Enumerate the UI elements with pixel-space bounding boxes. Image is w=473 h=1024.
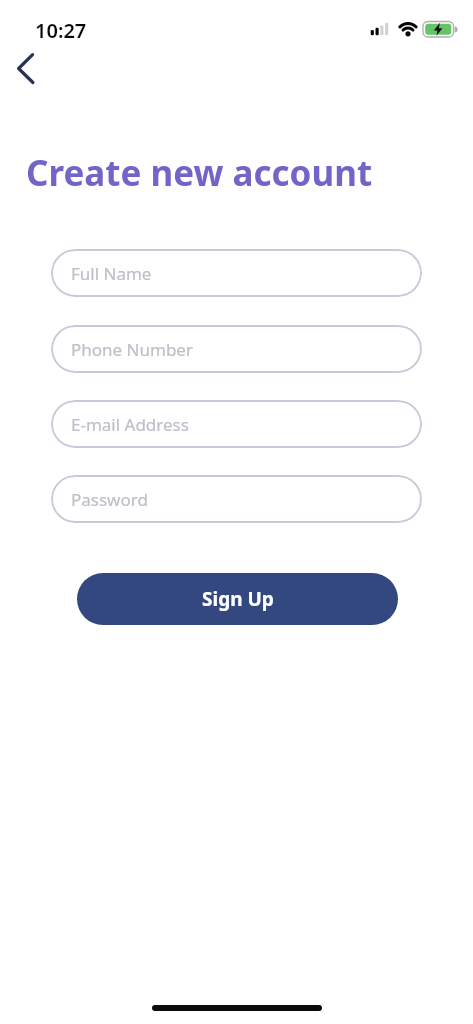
staticText: Phone Number: [71, 338, 193, 361]
staticText: E-mail Address: [71, 413, 189, 436]
staticText: Password: [71, 488, 148, 511]
staticText: Sign Up: [202, 586, 274, 612]
button[interactable]: E-mail Address: [51, 400, 422, 448]
staticText: Full Name: [71, 262, 152, 285]
button[interactable]: [8, 47, 48, 91]
button[interactable]: Full Name: [51, 249, 422, 297]
button[interactable]: Sign Up: [77, 573, 398, 625]
staticText: Create new account: [26, 149, 373, 197]
button[interactable]: Phone Number: [51, 325, 422, 373]
staticText: 10:27: [35, 17, 87, 44]
button[interactable]: Password: [51, 475, 422, 523]
